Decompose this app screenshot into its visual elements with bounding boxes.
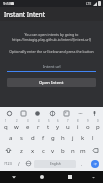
button[interactable]: Clipboard [61,108,71,118]
staticText: q [4,123,8,131]
staticText: y [56,123,60,131]
staticText: u [66,123,70,131]
button[interactable]: 9 [83,118,93,131]
button[interactable]: Change language [23,157,33,170]
staticText: t [47,123,50,131]
button[interactable]: z [16,144,27,157]
button[interactable]: Stickers [32,108,42,118]
staticText: 0 [97,119,99,123]
staticText: j [72,134,74,142]
staticText: o [86,123,90,131]
staticText: d [31,134,35,142]
button[interactable]: j [68,131,78,144]
staticText: e [26,123,30,131]
staticText: n [71,147,75,155]
staticText: Optionally enter the url below and press… [7,49,96,54]
staticText: z [20,147,23,155]
button[interactable]: 7 [63,118,73,131]
button[interactable]: Voice search [4,108,14,118]
button[interactable]: b [58,144,68,157]
staticText: f [42,134,45,142]
button[interactable]: v [48,144,58,157]
staticText: s [20,134,23,142]
button[interactable]: Open Intent [7,78,96,87]
staticText: 4 [38,119,40,123]
staticText: 9:58 [3,1,12,7]
button[interactable]: f [38,131,48,144]
staticText: c [42,147,45,155]
staticText: r [37,123,40,131]
button[interactable]: l [88,131,98,144]
button[interactable]: x [27,144,38,157]
staticText: g [51,134,55,142]
staticText: Open Intent [39,80,64,86]
button[interactable]: More options [75,108,85,118]
button[interactable]: h [58,131,68,144]
button[interactable]: Shift [0,144,16,157]
staticText: Instant Intent [4,10,46,18]
staticText: b [61,147,65,155]
staticText: l [92,134,94,142]
staticText: p [96,123,100,131]
button[interactable]: 1 [0,118,11,131]
staticText: 6 [57,119,59,123]
staticText: k [81,134,85,142]
staticText: 1 [5,119,7,123]
button[interactable]: ?123 [1,157,14,170]
staticText: a [9,134,13,142]
staticText: 2 [16,119,18,123]
button[interactable]: 8 [73,118,83,131]
staticText: / [18,161,20,167]
button[interactable]: 4 [33,118,43,131]
staticText: 5 [48,119,50,123]
button[interactable]: GIF [18,108,28,118]
staticText: i [77,123,79,131]
staticText: LTE [86,2,92,6]
button[interactable]: English [34,160,76,168]
button[interactable]: Home [28,171,56,183]
button[interactable]: m [78,144,88,157]
button[interactable]: Emoji [47,108,57,118]
button[interactable]: 6 [53,118,63,131]
button[interactable]: 3 [22,118,33,131]
button[interactable]: n [68,144,78,157]
staticText: v [51,147,55,155]
staticText: 3 [27,119,29,123]
button[interactable]: d [27,131,38,144]
staticText: ?123 [4,161,12,166]
button[interactable]: k [78,131,88,144]
button[interactable]: Enter [87,157,102,170]
button[interactable]: Intent url [7,62,96,72]
staticText: x [31,147,35,155]
staticText: 8 [77,119,79,123]
button[interactable]: Hide [84,171,103,183]
staticText: English [50,162,61,166]
button[interactable]: s [16,131,27,144]
staticText: You can open intents by going to https:/… [7,32,96,42]
button[interactable]: 0 [93,118,103,131]
button[interactable]: Recents [56,171,84,183]
button[interactable]: g [48,131,58,144]
staticText: 7 [67,119,69,123]
button[interactable]: a [5,131,16,144]
staticText: w [14,123,19,131]
staticText: Intent url [43,64,61,69]
button[interactable]: 5 [43,118,53,131]
button[interactable]: Close keyboard [0,171,28,183]
button[interactable]: / [14,157,23,170]
button[interactable]: c [38,144,48,157]
staticText: . [81,161,83,167]
button[interactable]: Backspace [88,144,103,157]
staticText: m [80,147,86,155]
button[interactable]: Settings [89,108,99,118]
button[interactable]: 2 [11,118,22,131]
button[interactable]: . [77,157,87,170]
staticText: 9 [87,119,89,123]
staticText: h [61,134,65,142]
